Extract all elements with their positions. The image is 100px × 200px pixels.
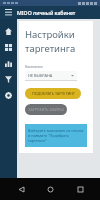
button[interactable]: Settings xyxy=(0,87,17,103)
button[interactable]: ПОДОБРАТЬ ТАРГЕТИНГ xyxy=(25,88,81,99)
button[interactable]: Open navigation menu xyxy=(0,6,17,19)
staticText: Настройки xyxy=(25,28,75,41)
staticText: Выберите кампанию из списка и нажмите "П… xyxy=(28,128,84,143)
button[interactable]: Dashboard xyxy=(0,39,17,55)
button[interactable]: Reports xyxy=(0,55,17,71)
staticText: НЕ ВЫБРАНА xyxy=(28,73,53,78)
staticText: Кампания xyxy=(25,64,43,69)
staticText: таргетинга xyxy=(25,42,76,55)
staticText: MIOO личный кабинет xyxy=(17,9,76,16)
button[interactable]: НЕ ВЫБРАНА xyxy=(25,71,77,80)
button[interactable]: Recent apps xyxy=(71,180,89,198)
button[interactable]: Home xyxy=(41,180,59,198)
button[interactable]: ЗАГРУЗИТЬ ФАЙЛЫ xyxy=(25,104,67,115)
staticText: ЗАГРУЗИТЬ ФАЙЛЫ xyxy=(28,107,64,112)
button[interactable]: Home xyxy=(0,23,17,39)
button[interactable]: Targeting filter xyxy=(0,71,17,87)
button[interactable]: Back xyxy=(12,180,30,198)
staticText: ПОДОБРАТЬ ТАРГЕТИНГ xyxy=(32,91,75,96)
